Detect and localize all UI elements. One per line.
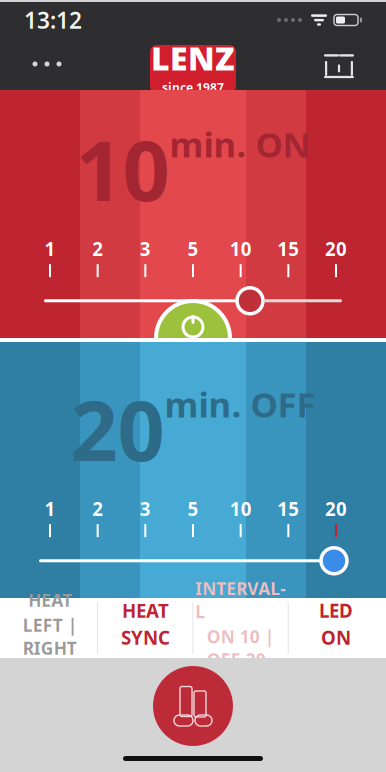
staticText: ON bbox=[321, 625, 351, 650]
staticText: 2 bbox=[92, 496, 103, 521]
staticText: 15 bbox=[277, 236, 299, 261]
button[interactable]: Power on bbox=[156, 301, 230, 375]
staticText: 20 bbox=[325, 496, 347, 521]
staticText: 2 bbox=[92, 236, 103, 261]
button[interactable]: Menu bbox=[12, 38, 82, 90]
staticText: LENZ bbox=[151, 37, 235, 79]
staticText: HEAT bbox=[28, 588, 72, 611]
staticText: 20 bbox=[70, 374, 164, 484]
staticText: 10 bbox=[75, 114, 169, 224]
staticText: LEFT | RIGHT bbox=[23, 613, 78, 659]
staticText: since 1987 bbox=[162, 79, 224, 95]
staticText: 20 bbox=[325, 236, 347, 261]
staticText: min. OFF bbox=[164, 381, 315, 427]
button[interactable]: INTERVALL bbox=[193, 598, 288, 658]
staticText: 5 bbox=[187, 496, 198, 521]
button[interactable]: HEAT bbox=[98, 598, 192, 658]
staticText: SYNC bbox=[121, 625, 170, 650]
staticText: 1 bbox=[44, 496, 55, 521]
staticText: 5 bbox=[187, 236, 198, 261]
staticText: INTERVALL bbox=[195, 577, 286, 623]
staticText: ON bbox=[176, 339, 210, 367]
button[interactable]: LED bbox=[289, 598, 383, 658]
staticText: 10 bbox=[230, 496, 252, 521]
staticText: 1 bbox=[44, 236, 55, 261]
staticText: ON 10 | OFF 20 bbox=[207, 625, 275, 671]
staticText: 3 bbox=[140, 236, 151, 261]
staticText: 3 bbox=[140, 496, 151, 521]
staticText: min. ON bbox=[169, 121, 310, 167]
staticText: HEAT bbox=[122, 598, 169, 623]
button[interactable]: Home bbox=[304, 38, 374, 90]
button[interactable]: HEAT bbox=[3, 598, 97, 658]
button[interactable]: Device bbox=[153, 666, 233, 746]
staticText: 15 bbox=[277, 496, 299, 521]
staticText: 10 bbox=[230, 236, 252, 261]
staticText: 13:12 bbox=[24, 5, 82, 35]
staticText: LED bbox=[319, 598, 353, 623]
